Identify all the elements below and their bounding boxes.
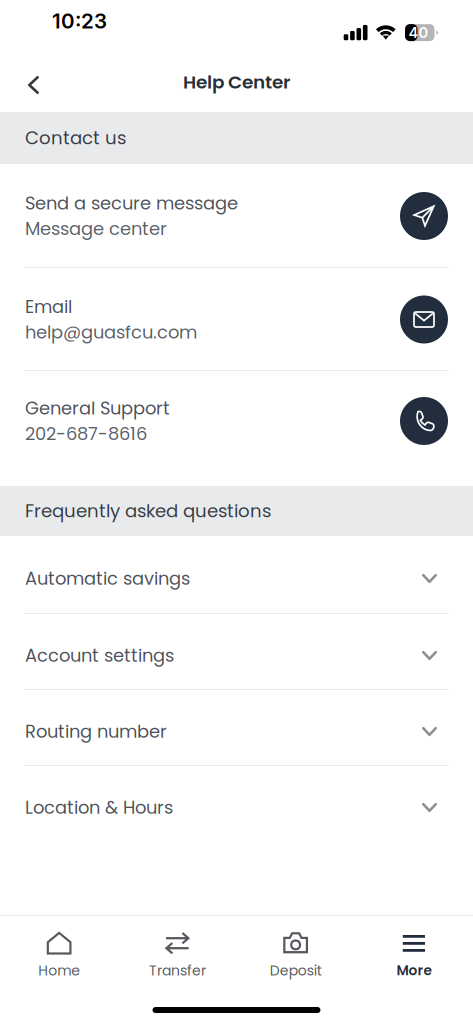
staticText: Account settings bbox=[25, 643, 174, 668]
staticText: Deposit bbox=[270, 961, 322, 980]
staticText: Email bbox=[25, 294, 72, 319]
button[interactable]: Routing number bbox=[0, 690, 473, 765]
staticText: Contact us bbox=[25, 125, 126, 151]
staticText: 10:23 bbox=[52, 8, 107, 33]
staticText: More bbox=[396, 961, 431, 980]
staticText: Help Center bbox=[183, 69, 290, 95]
staticText: Frequently asked questions bbox=[25, 498, 271, 524]
button[interactable]: Email bbox=[0, 268, 473, 370]
staticText: help@guasfcu.com bbox=[25, 320, 197, 345]
button[interactable]: Deposit bbox=[236, 930, 355, 982]
staticText: Message center bbox=[25, 216, 167, 241]
staticText: General Support bbox=[25, 396, 170, 421]
staticText: Home bbox=[38, 961, 80, 980]
button[interactable]: Automatic savings bbox=[0, 536, 473, 613]
staticText: Location & Hours bbox=[25, 795, 173, 820]
button[interactable]: Transfer bbox=[118, 930, 236, 982]
button[interactable]: Back bbox=[0, 52, 61, 112]
button[interactable]: Home bbox=[0, 930, 118, 982]
button[interactable]: Account settings bbox=[0, 614, 473, 689]
staticText: Transfer bbox=[149, 961, 206, 980]
button[interactable]: Location & Hours bbox=[0, 766, 473, 841]
button[interactable]: General Support bbox=[0, 371, 473, 486]
button[interactable]: More bbox=[355, 930, 473, 982]
staticText: Routing number bbox=[25, 719, 167, 744]
button[interactable]: Send a secure message bbox=[0, 164, 473, 267]
staticText: Automatic savings bbox=[25, 566, 190, 591]
staticText: 202-687-8616 bbox=[25, 421, 147, 446]
staticText: Send a secure message bbox=[25, 191, 238, 216]
staticText: 40 bbox=[408, 24, 428, 41]
